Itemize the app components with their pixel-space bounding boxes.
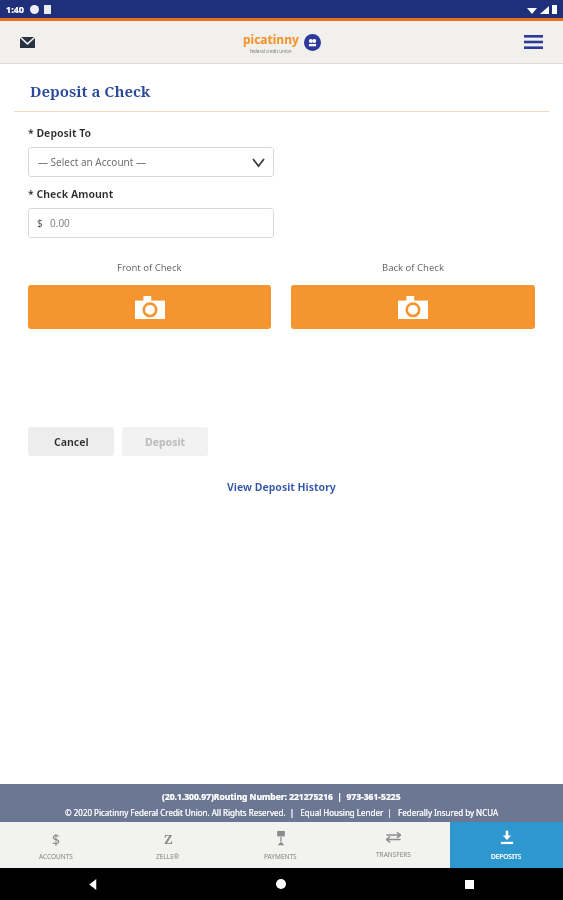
staticText: 1:40 [6,3,24,15]
staticText: Z [164,830,173,846]
button[interactable]: $ [28,208,274,238]
staticText: * Deposit To [28,126,92,140]
button[interactable]: DEPOSITS [450,822,563,868]
button[interactable]: Back [0,868,187,900]
staticText: $ [52,830,61,846]
staticText: federal credit union [250,48,292,54]
staticText: Front of Check [117,261,182,274]
button[interactable]: Capture Back of Check [291,285,535,329]
staticText: Deposit [145,435,186,449]
button[interactable]: Z [112,822,224,868]
staticText: picatinny [243,31,299,47]
button[interactable]: Deposit [122,427,208,456]
button[interactable]: — Select an Account — [28,147,274,177]
staticText: (20.1.300.97)Routing Number: 221275216 |… [162,791,401,803]
button[interactable]: Home [187,868,375,900]
staticText: PAYMENTS [264,852,297,861]
button[interactable]: PAYMENTS [224,822,337,868]
staticText: ZELLE® [156,852,180,861]
staticText: © 2020 Picatinny Federal Credit Union. A… [65,807,499,818]
staticText: $ [37,216,43,230]
staticText: Cancel [54,435,89,449]
button[interactable]: Cancel [28,427,114,456]
staticText: View Deposit History [227,480,336,494]
button[interactable]: View Deposit History [223,476,340,498]
staticText: Deposit a Check [30,81,151,101]
staticText: TRANSFERS [376,850,411,859]
button[interactable]: $ [0,822,112,868]
staticText: 0.00 [50,216,70,230]
button[interactable]: TRANSFERS [337,822,450,868]
staticText: DEPOSITS [491,852,522,861]
button[interactable]: Menu [518,29,549,55]
button[interactable]: Capture Front of Check [28,285,271,329]
staticText: * Check Amount [28,187,114,201]
staticText: Back of Check [382,261,444,274]
button[interactable]: Messages [14,31,41,54]
staticText: — Select an Account — [38,155,146,169]
button[interactable]: Recents [375,868,563,900]
staticText: ACCOUNTS [39,852,73,861]
